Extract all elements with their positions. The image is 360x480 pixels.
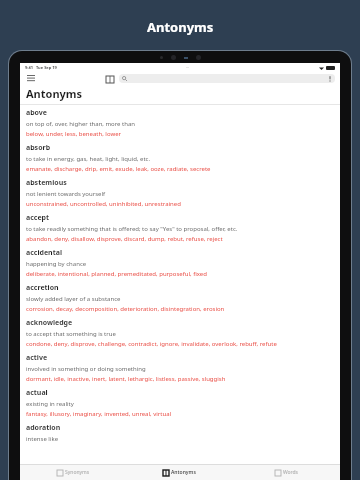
staticText: on top of, over, higher than, more than — [26, 120, 135, 128]
staticText: Antonyms — [171, 469, 196, 476]
button[interactable]: Book — [104, 73, 116, 85]
button[interactable]: adoration — [20, 420, 340, 445]
staticText: adoration — [26, 423, 61, 433]
button[interactable]: above — [20, 105, 340, 140]
staticText: emanate, discharge, drip, emit, exude, l… — [26, 165, 211, 173]
button[interactable]: Antonyms — [126, 465, 233, 480]
staticText: dormant, idle, inactive, inert, latent, … — [26, 375, 226, 383]
button[interactable]: Synonyms — [20, 465, 126, 480]
staticText: below, under, less, beneath, lower — [26, 130, 122, 138]
staticText: actual — [26, 388, 48, 398]
staticText: to take readily something that is offere… — [26, 225, 238, 233]
staticText: fantasy, illusory, imaginary, invented, … — [26, 410, 172, 418]
button[interactable]: Menu — [25, 73, 36, 84]
staticText: slowly added layer of a substance — [26, 295, 121, 303]
staticText: condone, deny, disprove, challenge, cont… — [26, 340, 277, 348]
button[interactable]: actual — [20, 385, 340, 420]
staticText: not lenient towards yourself — [26, 190, 106, 198]
staticText: absorb — [26, 143, 51, 153]
staticText: accretion — [26, 283, 59, 293]
staticText: acknowledge — [26, 318, 73, 328]
staticText: ··· — [186, 65, 190, 70]
staticText: 9:41 — [25, 65, 33, 70]
staticText: Antonyms — [147, 18, 214, 36]
button[interactable]: active — [20, 350, 340, 385]
staticText: Antonyms — [26, 86, 83, 101]
staticText: to take in energy, gas, heat, light, liq… — [26, 155, 151, 163]
staticText: accidental — [26, 248, 62, 258]
staticText: Words — [283, 469, 299, 476]
staticText: to accept that something is true — [26, 330, 116, 338]
staticText: active — [26, 353, 48, 363]
button[interactable]: absorb — [20, 140, 340, 175]
staticText: Synonyms — [65, 469, 90, 476]
staticText: unconstrained, uncontrolled, uninhibited… — [26, 200, 181, 208]
staticText: existing in reality — [26, 400, 74, 408]
button[interactable]: accretion — [20, 280, 340, 315]
staticText: deliberate, intentional, planned, premed… — [26, 270, 207, 278]
staticText: Tue Sep 19 — [36, 65, 57, 70]
staticText: abandon, deny, disallow, disprove, disca… — [26, 235, 223, 243]
button[interactable] — [119, 74, 335, 83]
button[interactable]: abstemious — [20, 175, 340, 210]
staticText: happening by chance — [26, 260, 87, 268]
button[interactable]: accidental — [20, 245, 340, 280]
staticText: accept — [26, 213, 50, 223]
staticText: abstemious — [26, 178, 67, 188]
button[interactable]: acknowledge — [20, 315, 340, 350]
staticText: intense like — [26, 435, 59, 443]
button[interactable]: accept — [20, 210, 340, 245]
staticText: involved in something or doing something — [26, 365, 146, 373]
staticText: above — [26, 108, 48, 118]
button[interactable]: Words — [233, 465, 340, 480]
staticText: corrosion, decay, decomposition, deterio… — [26, 305, 225, 313]
